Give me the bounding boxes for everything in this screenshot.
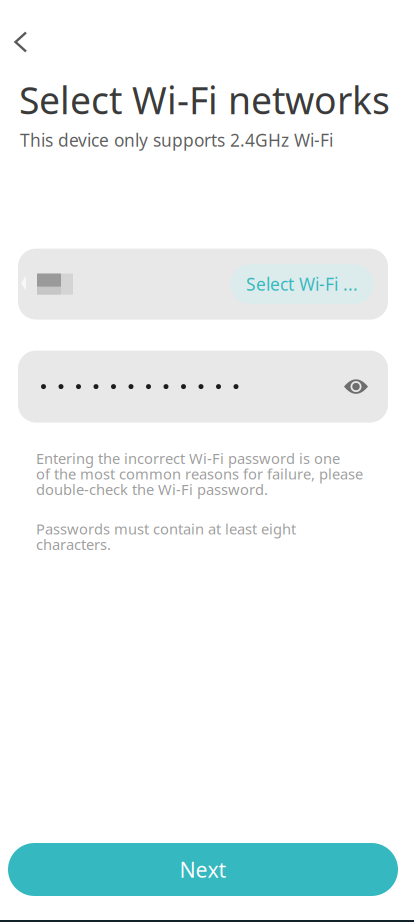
button[interactable]: Next: [8, 843, 398, 896]
staticText: Passwords must contain at least eight ch…: [36, 519, 296, 554]
staticText: Select Wi-Fi ...: [246, 273, 358, 296]
staticText: Entering the incorrect Wi-Fi password is…: [36, 449, 363, 499]
staticText: This device only supports 2.4GHz Wi-Fi: [20, 129, 333, 152]
staticText: Next: [179, 855, 226, 884]
button[interactable]: Back: [0, 0, 52, 65]
button[interactable]: Show password: [334, 364, 378, 409]
staticText: Select Wi-Fi networks: [19, 75, 390, 125]
button[interactable]: Select Wi-Fi ...: [230, 264, 374, 304]
